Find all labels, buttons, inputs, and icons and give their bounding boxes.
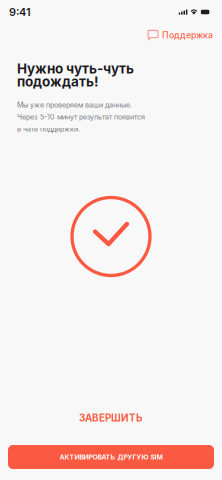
- button[interactable]: ЗАВЕРШИТЬ: [0, 391, 222, 445]
- staticText: Поддержка: [162, 30, 213, 40]
- button[interactable]: АКТИВИРОВАТЬ ДРУГУЮ SIM: [8, 445, 214, 469]
- staticText: в чате поддержки.: [17, 125, 80, 133]
- staticText: Мы уже проверяем ваши данные.: [17, 101, 132, 109]
- button[interactable]: Поддержка: [143, 27, 218, 43]
- staticText: ЗАВЕРШИТЬ: [79, 412, 143, 424]
- staticText: Нужно чуть-чуть: [17, 60, 134, 77]
- staticText: 9:41: [9, 5, 31, 19]
- staticText: АКТИВИРОВАТЬ ДРУГУЮ SIM: [59, 453, 162, 461]
- staticText: Через 5-10 минут результат появится: [17, 113, 145, 121]
- staticText: подождать!: [17, 73, 99, 90]
